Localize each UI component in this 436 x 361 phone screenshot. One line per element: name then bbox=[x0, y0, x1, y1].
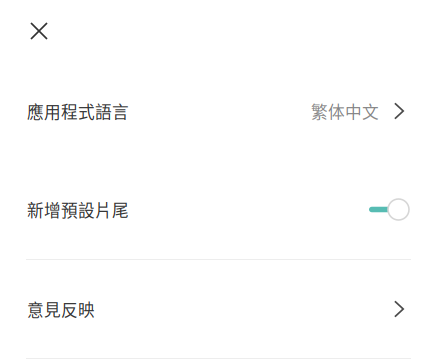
staticText: 新增預設片尾 bbox=[27, 197, 129, 221]
button[interactable]: On bbox=[0, 160, 436, 259]
staticText: 應用程式語言 bbox=[27, 99, 129, 123]
button[interactable]: 意見反映 bbox=[0, 260, 436, 358]
button[interactable]: Close bbox=[18, 10, 60, 52]
staticText: 繁体中文 bbox=[311, 99, 379, 123]
button[interactable]: 應用程式語言 bbox=[0, 62, 436, 160]
staticText: 意見反映 bbox=[27, 297, 95, 321]
